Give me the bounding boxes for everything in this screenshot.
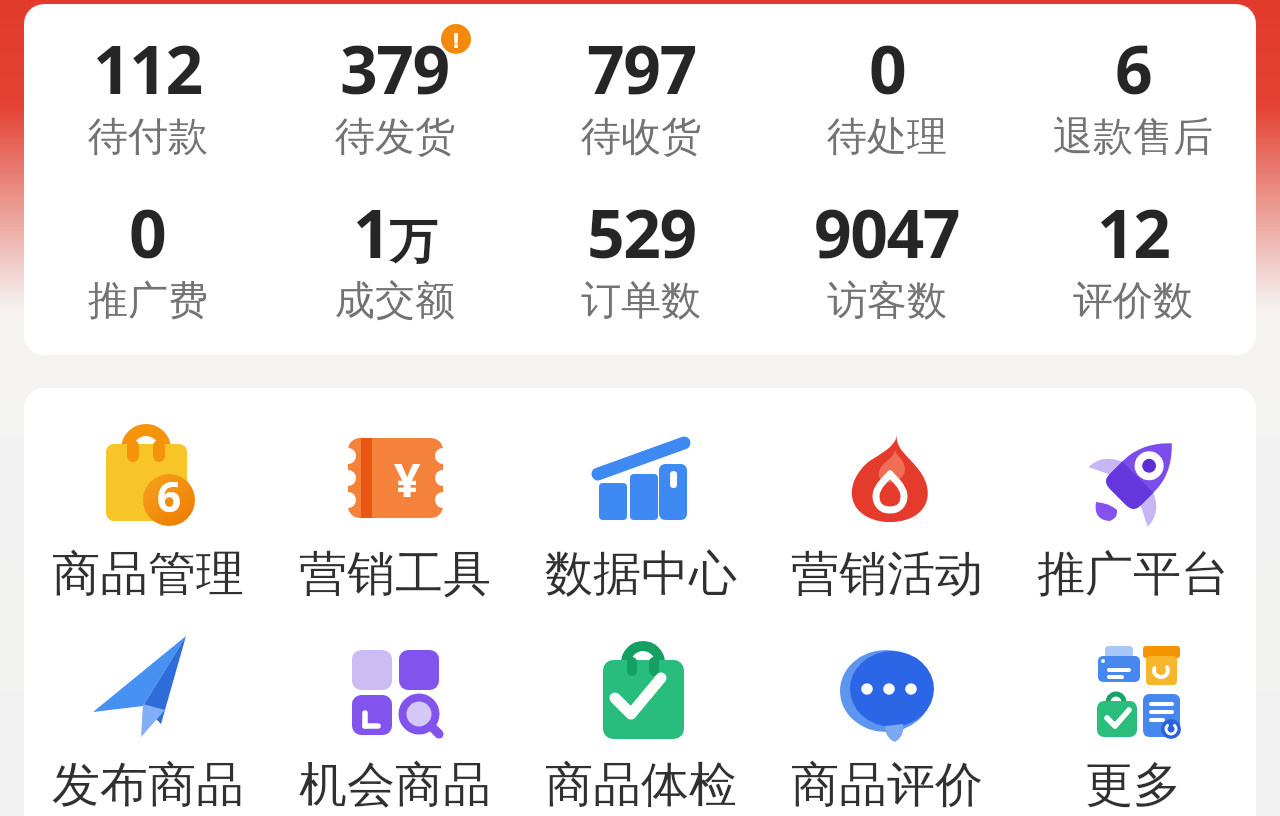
staticText: 6 <box>1115 23 1152 113</box>
button[interactable]: 0 <box>24 187 271 327</box>
staticText: 12 <box>1097 187 1170 277</box>
button[interactable]: 6 <box>1010 23 1256 163</box>
staticText: 1万 <box>353 187 436 277</box>
button[interactable]: 379 <box>271 23 518 163</box>
staticText: 商品管理 <box>52 544 244 604</box>
staticText: 访客数 <box>827 275 947 325</box>
staticText: 数据中心 <box>545 544 737 604</box>
staticText: 营销活动 <box>791 544 983 604</box>
staticText: 9047 <box>814 187 960 277</box>
button[interactable]: 商品评价 <box>764 640 1010 815</box>
button[interactable]: 发布商品 <box>24 640 271 815</box>
button[interactable]: 6 <box>24 430 271 604</box>
button[interactable]: 数据中心 <box>518 430 764 604</box>
staticText: 112 <box>93 23 202 113</box>
button[interactable]: 9047 <box>764 187 1010 327</box>
button[interactable]: 商品体检 <box>518 640 764 815</box>
staticText: 商品体检 <box>545 755 737 815</box>
button[interactable]: 529 <box>518 187 764 327</box>
staticText: 0 <box>129 187 166 277</box>
staticText: 退款售后 <box>1053 111 1213 161</box>
staticText: 6 <box>157 467 182 524</box>
staticText: 机会商品 <box>299 755 491 815</box>
button[interactable]: 112 <box>24 23 271 163</box>
button[interactable]: 机会商品 <box>271 640 518 815</box>
staticText: 推广平台 <box>1037 544 1229 604</box>
button[interactable]: 0 <box>764 23 1010 163</box>
staticText: 0 <box>869 23 906 113</box>
staticText: 待处理 <box>827 111 947 161</box>
staticText: 待付款 <box>88 111 208 161</box>
button[interactable]: 推广平台 <box>1010 430 1256 604</box>
button[interactable]: 797 <box>518 23 764 163</box>
staticText: 评价数 <box>1073 275 1193 325</box>
staticText: 发布商品 <box>52 755 244 815</box>
button[interactable]: 1万 <box>271 187 518 327</box>
staticText: 推广费 <box>88 275 208 325</box>
button[interactable]: ¥ <box>271 430 518 604</box>
staticText: 成交额 <box>335 275 455 325</box>
button[interactable]: 营销活动 <box>764 430 1010 604</box>
button[interactable]: 更多 <box>1010 640 1256 815</box>
staticText: 待收货 <box>581 111 701 161</box>
staticText: 更多 <box>1085 755 1181 815</box>
staticText: 商品评价 <box>791 755 983 815</box>
staticText: ¥ <box>394 448 421 511</box>
button[interactable]: 12 <box>1010 187 1256 327</box>
staticText: 待发货 <box>335 111 455 161</box>
staticText: 379 <box>340 23 449 113</box>
staticText: 营销工具 <box>299 544 491 604</box>
staticText: ! <box>453 24 460 54</box>
staticText: 797 <box>587 23 696 113</box>
staticText: 529 <box>587 187 696 277</box>
staticText: 订单数 <box>581 275 701 325</box>
